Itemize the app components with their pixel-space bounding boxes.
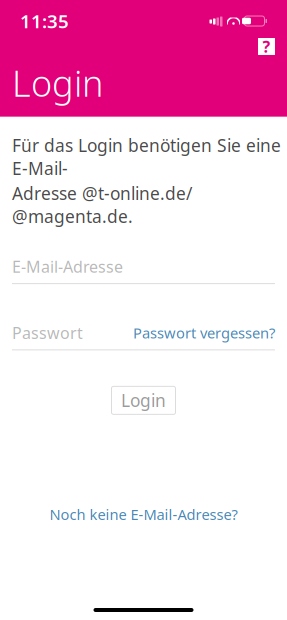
button[interactable]: Help	[258, 38, 275, 55]
staticText: Login	[121, 389, 166, 412]
button[interactable]: Login	[111, 386, 175, 414]
button[interactable]: Passwort vergessen?	[133, 323, 275, 342]
staticText: ?	[262, 36, 270, 57]
staticText: Passwort	[12, 322, 83, 343]
staticText: Login	[12, 59, 103, 107]
staticText: Adresse @t-online.de/@magenta.de.	[12, 182, 192, 228]
staticText: Passwort vergessen?	[133, 323, 275, 342]
staticText: E-Mail-Adresse	[12, 256, 123, 277]
staticText: Noch keine E-Mail-Adresse?	[49, 504, 237, 524]
staticText: Für das Login benötigen Sie eine E-Mail-	[12, 134, 281, 180]
button[interactable]: Noch keine E-Mail-Adresse?	[49, 504, 237, 524]
staticText: 11:35	[20, 9, 69, 33]
